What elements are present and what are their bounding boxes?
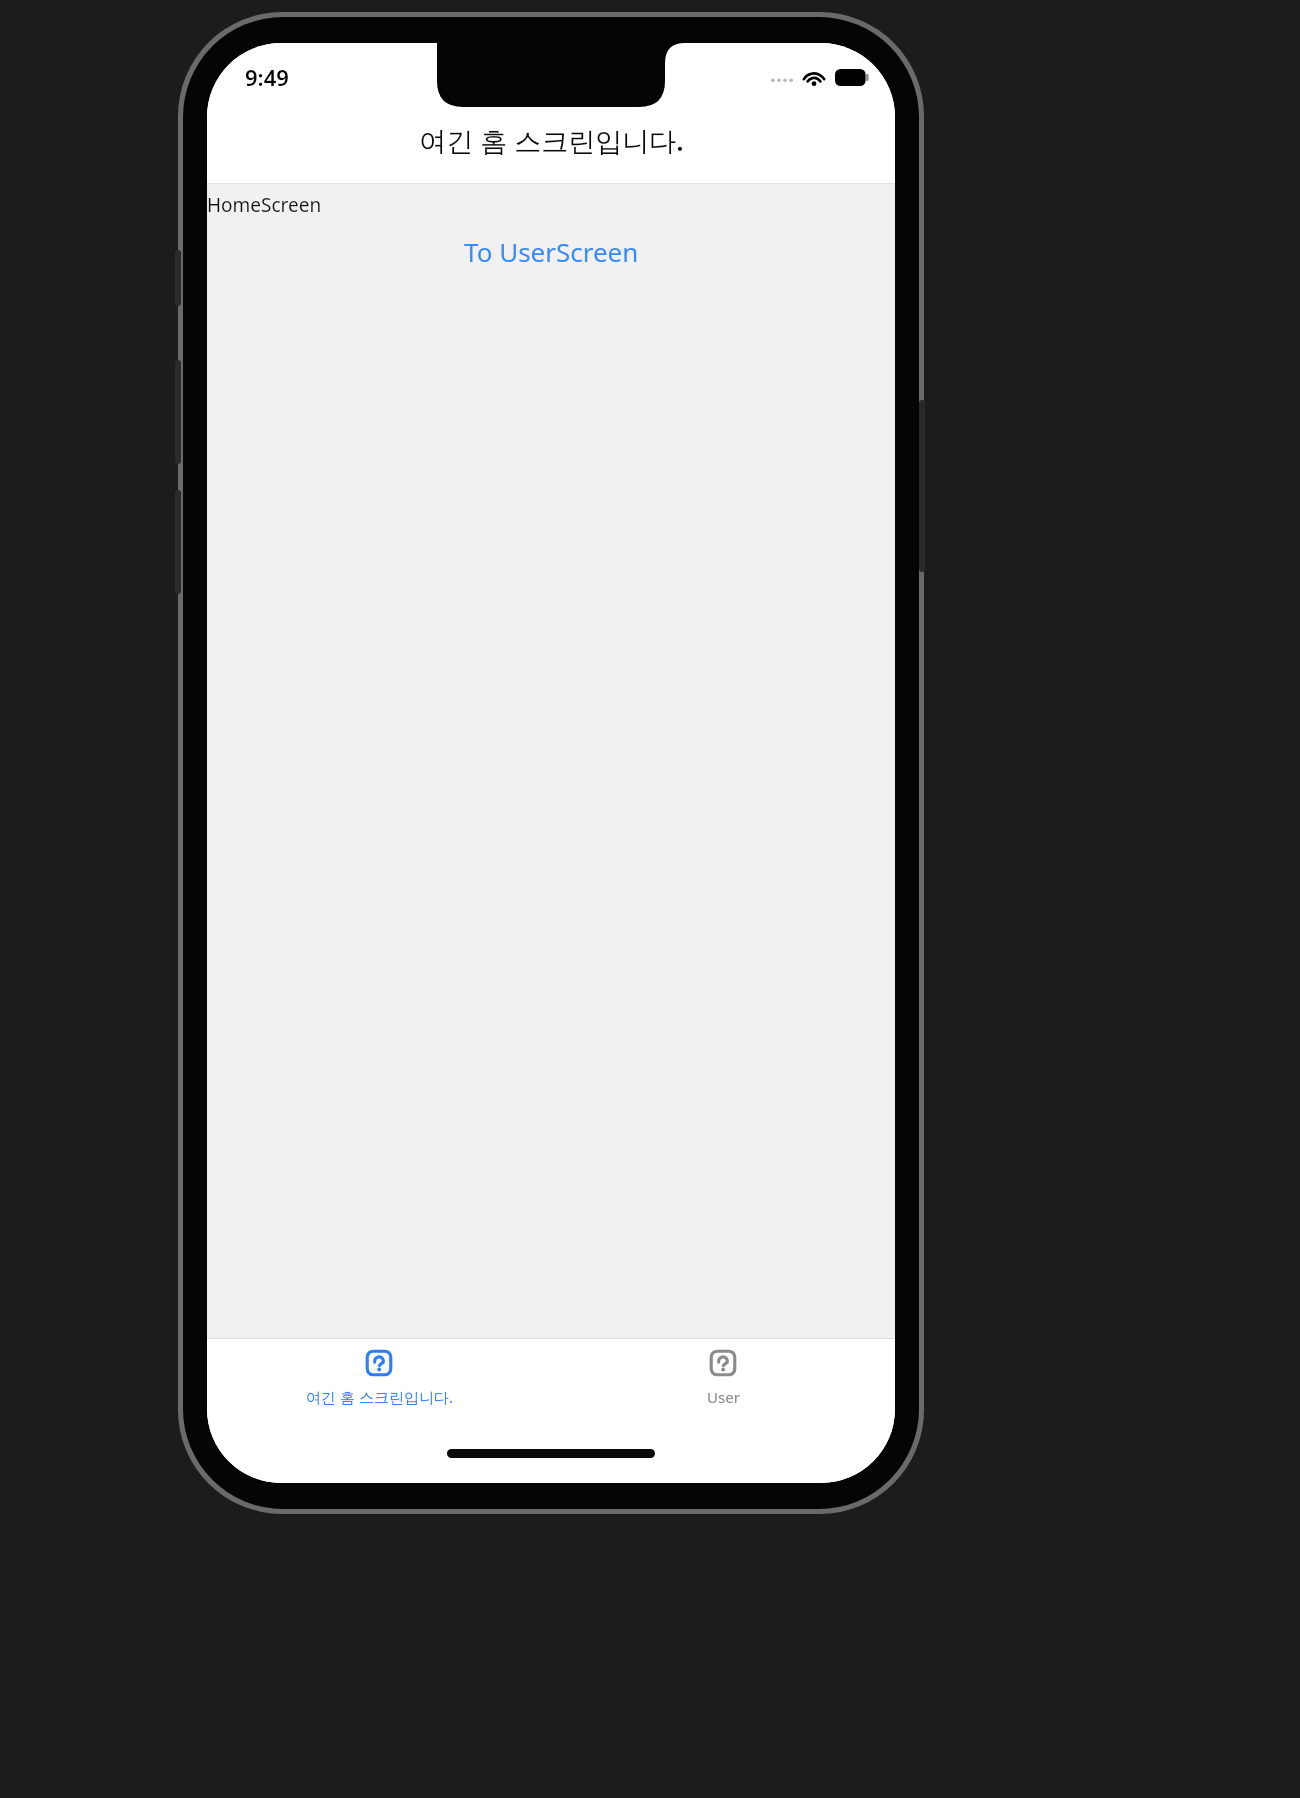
button[interactable]: 여긴 홈 스크린입니다. — [207, 1339, 551, 1435]
staticText: To UserScreen — [464, 234, 639, 269]
button[interactable]: User — [551, 1339, 895, 1435]
staticText: 9:49 — [245, 62, 289, 92]
staticText: 여긴 홈 스크린입니다. — [419, 122, 684, 159]
staticText: HomeScreen — [207, 192, 322, 218]
button[interactable]: To UserScreen — [454, 230, 649, 273]
staticText: User — [707, 1387, 740, 1407]
staticText: 여긴 홈 스크린입니다. — [306, 1387, 453, 1407]
